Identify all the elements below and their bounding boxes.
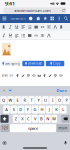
button[interactable]: Share (31, 74, 36, 77)
button[interactable]: Share (36, 74, 42, 77)
button[interactable]: Download (22, 61, 44, 66)
button[interactable]: Action (43, 14, 47, 23)
button[interactable]: F (25, 105, 31, 113)
staticText: P (65, 97, 67, 103)
button[interactable]: Share (58, 74, 63, 77)
button[interactable]: Done (55, 86, 68, 95)
button[interactable]: Format (60, 25, 64, 29)
button[interactable]: Format (2, 33, 6, 38)
staticText: textmaximum.com (17, 8, 51, 13)
staticText: Copy (53, 62, 60, 65)
staticText: X (21, 116, 23, 121)
button[interactable]: Share (15, 74, 20, 77)
button[interactable]: Format (41, 25, 44, 29)
button[interactable]: E (14, 96, 21, 104)
button[interactable]: Start Typing (1, 61, 21, 66)
staticText: Y (37, 97, 39, 103)
button[interactable]: Format (34, 25, 38, 29)
button[interactable]: R (21, 96, 28, 104)
button[interactable]: Shift (0, 115, 9, 123)
button[interactable]: Format (15, 33, 19, 38)
button[interactable]: I (49, 96, 56, 104)
staticText: textmaximum (10, 17, 25, 20)
button[interactable]: H (39, 105, 45, 113)
staticText: Download (28, 62, 42, 65)
button[interactable]: Format (21, 25, 25, 29)
button[interactable]: M (51, 115, 57, 123)
button[interactable]: C (26, 115, 31, 123)
button[interactable]: W (7, 96, 14, 104)
button[interactable]: Dictate (62, 140, 69, 146)
staticText: C (27, 116, 30, 121)
button[interactable]: P (63, 96, 70, 104)
staticText: return (59, 126, 68, 130)
staticText: Q (2, 97, 5, 103)
staticText: R (23, 97, 25, 103)
button[interactable]: Share (42, 74, 47, 77)
button[interactable]: Share (47, 74, 53, 77)
button[interactable]: X (19, 115, 25, 123)
button[interactable]: A (3, 105, 10, 113)
button[interactable]: Q (0, 96, 7, 104)
button[interactable]: G (32, 105, 38, 113)
button[interactable]: Format (9, 25, 12, 29)
button[interactable]: N (45, 115, 51, 123)
staticText: I (52, 97, 53, 103)
button[interactable]: Action (64, 14, 68, 23)
button[interactable]: K (53, 105, 59, 113)
button[interactable]: return (57, 124, 70, 132)
button[interactable]: 123 (0, 124, 9, 132)
staticText: E (17, 97, 19, 103)
button[interactable]: Z (13, 115, 19, 123)
button[interactable]: J (46, 105, 52, 113)
button[interactable]: Format (9, 33, 12, 38)
button[interactable]: Format (34, 33, 38, 38)
button[interactable]: L (60, 105, 67, 113)
staticText: M (52, 116, 56, 121)
staticText: S (13, 107, 15, 112)
staticText: Done (56, 88, 66, 93)
button[interactable]: Switch keyboard (1, 140, 8, 146)
staticText: space (28, 125, 38, 131)
button[interactable]: B (38, 115, 44, 123)
button[interactable]: Format (21, 33, 25, 38)
button[interactable]: D (18, 105, 24, 113)
staticText: Share on (2, 74, 14, 77)
button[interactable]: space (10, 124, 56, 132)
button[interactable]: Share (20, 74, 26, 77)
button[interactable]: Format (28, 25, 32, 29)
button[interactable]: Action (50, 14, 54, 23)
staticText: T (30, 97, 32, 103)
button[interactable]: Delete (61, 115, 70, 123)
button[interactable]: Y (35, 96, 42, 104)
staticText: U (44, 97, 47, 103)
button[interactable]: Share (53, 74, 58, 77)
button[interactable]: Action (57, 14, 61, 23)
button[interactable]: Action (36, 14, 40, 23)
staticText: F (27, 107, 29, 112)
staticText: J (49, 107, 50, 112)
staticText: B (40, 116, 43, 121)
button[interactable]: Next field (7, 86, 13, 95)
button[interactable]: U (42, 96, 49, 104)
button[interactable]: Previous field (1, 86, 7, 95)
button[interactable]: Format (47, 25, 51, 29)
button[interactable]: Format (15, 25, 19, 29)
button[interactable]: Format (53, 25, 57, 29)
button[interactable]: Format (2, 25, 6, 29)
button[interactable]: T (28, 96, 35, 104)
button[interactable]: Format (28, 33, 32, 38)
button[interactable]: V (32, 115, 38, 123)
button[interactable]: textmaximum.com (3, 7, 66, 14)
button[interactable]: Copy (46, 61, 64, 66)
button[interactable]: Menu (1, 14, 7, 23)
button[interactable]: S (10, 105, 17, 113)
staticText: L (62, 107, 64, 112)
button[interactable]: O (56, 96, 63, 104)
staticText: O (58, 97, 61, 103)
button[interactable]: Format (47, 33, 51, 38)
button[interactable]: Share (26, 74, 31, 77)
button[interactable]: Format (41, 33, 44, 38)
staticText: W (9, 97, 13, 103)
button[interactable]: Account (28, 14, 33, 23)
